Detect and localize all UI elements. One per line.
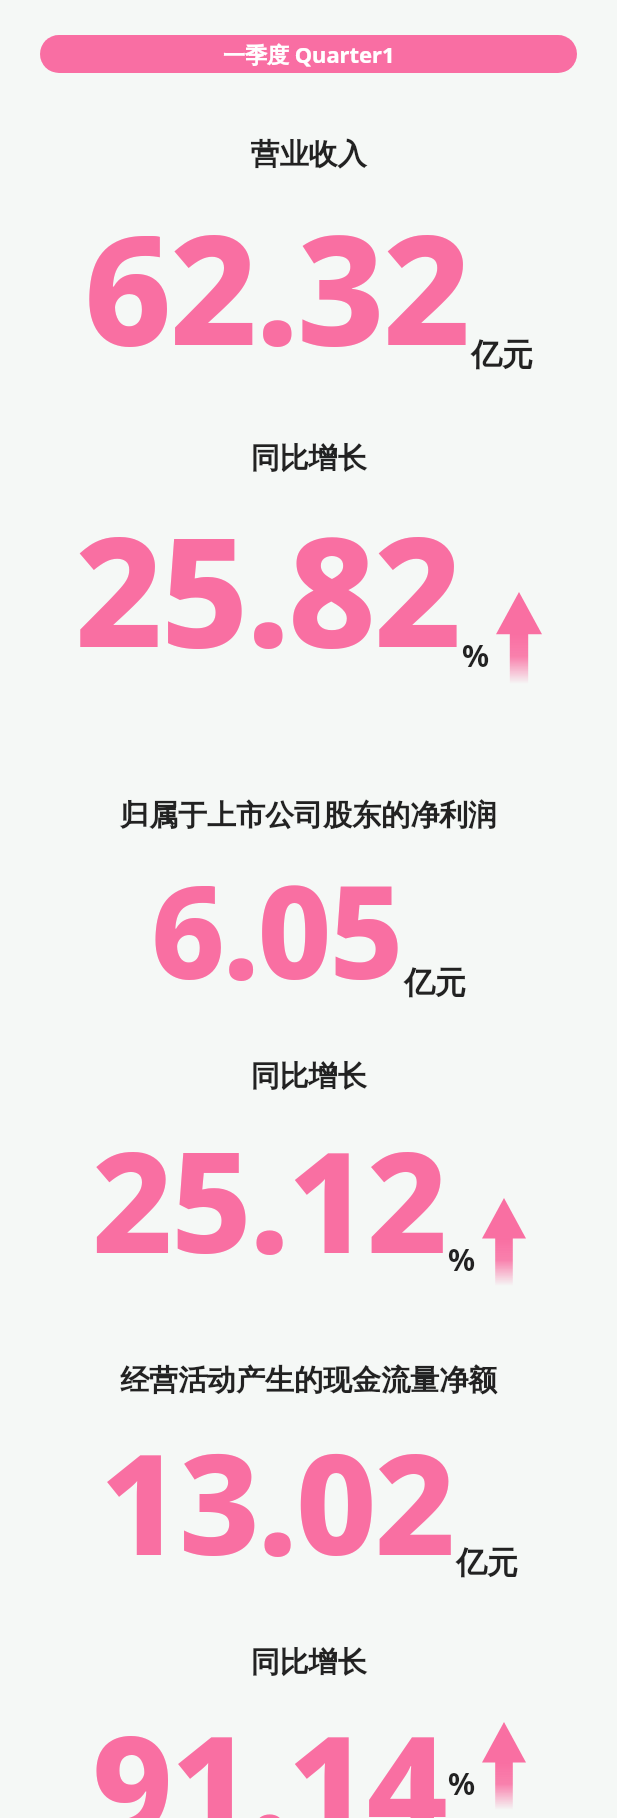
staticText: 25.82 (75, 485, 460, 692)
staticText: 同比增长 (0, 1644, 617, 1681)
staticText: 6.05 (151, 842, 402, 1016)
staticText: 经营活动产生的现金流量净额 (0, 1362, 617, 1399)
other: Increase (482, 1198, 526, 1286)
staticText: % (448, 1239, 476, 1280)
staticText: 归属于上市公司股东的净利润 (0, 797, 617, 834)
staticText: 营业收入 (0, 136, 617, 173)
staticText: 亿元 (471, 335, 533, 374)
staticText: 62.32 (84, 183, 469, 390)
staticText: 亿元 (404, 963, 466, 1002)
staticText: % (462, 635, 490, 676)
staticText: 一季度 Quarter1 (223, 39, 395, 69)
staticText: % (448, 1763, 476, 1804)
staticText: 亿元 (456, 1543, 518, 1582)
staticText: 同比增长 (0, 1058, 617, 1095)
other: Increase (496, 592, 542, 684)
staticText: 同比增长 (0, 440, 617, 477)
other: Increase (482, 1722, 526, 1810)
button[interactable]: 一季度 Quarter1 (40, 35, 577, 73)
staticText: 13.02 (100, 1405, 454, 1596)
staticText: 91.14 (92, 1687, 446, 1818)
staticText: 25.12 (92, 1103, 446, 1294)
